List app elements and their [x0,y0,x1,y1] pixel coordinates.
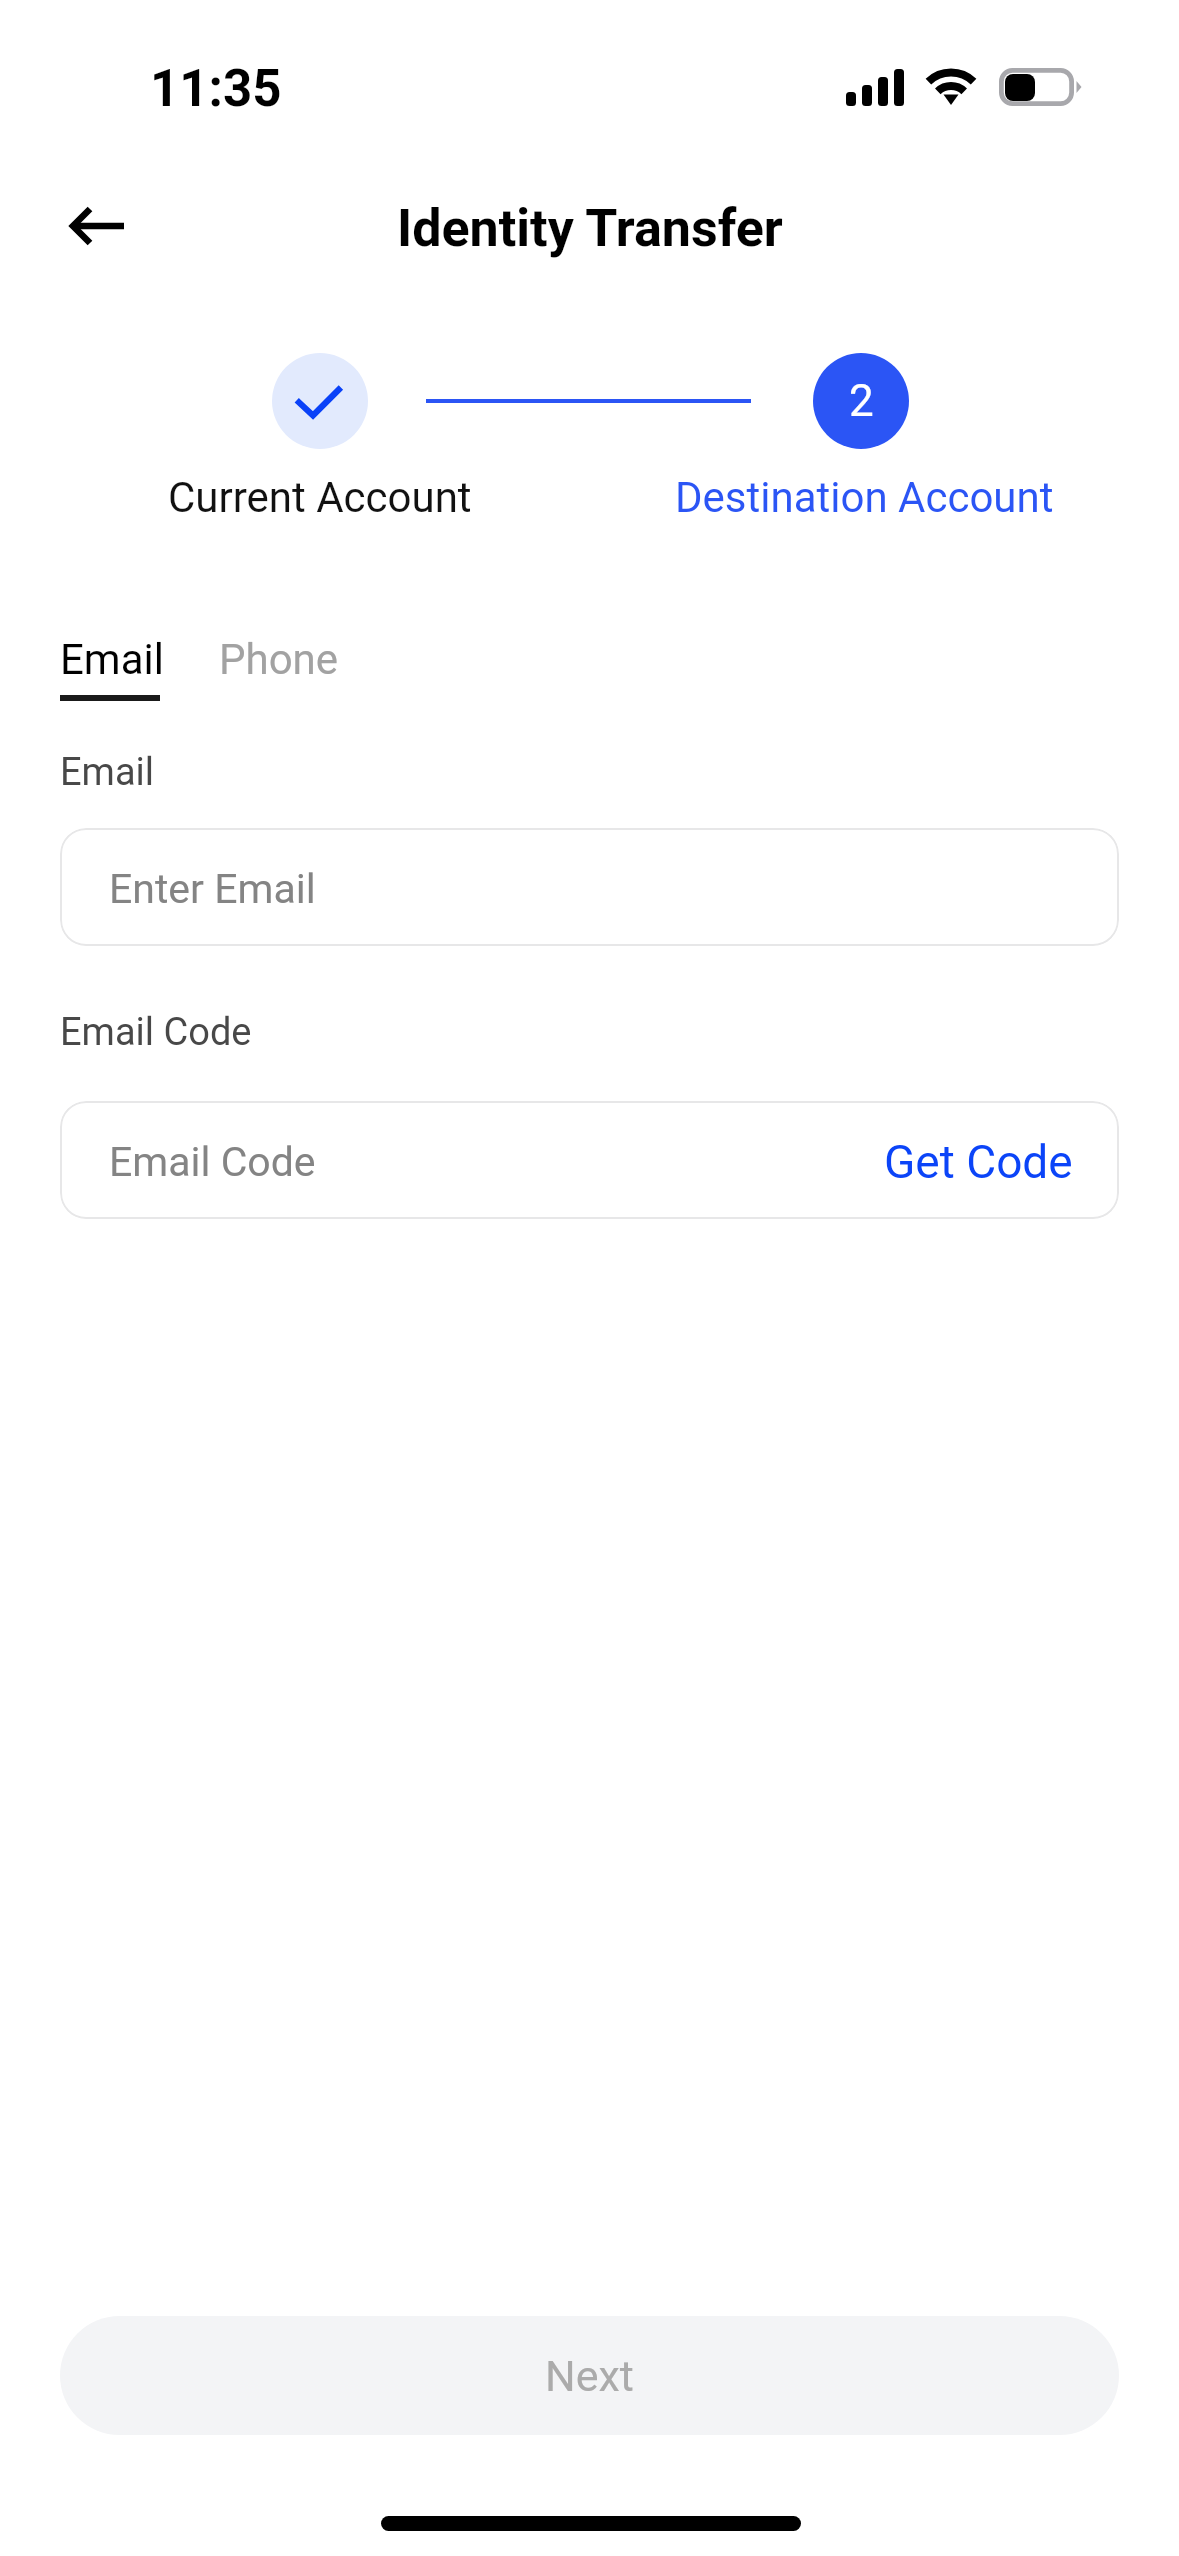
staticText: Next [545,2351,634,2401]
button[interactable]: Current Account step completed [272,353,368,449]
staticText: Email Code [60,1010,252,1055]
button[interactable]: Next [60,2316,1119,2435]
button[interactable]: Email Code [60,1101,1119,1219]
button[interactable]: Enter Email [60,828,1119,946]
button[interactable]: Email [60,635,200,713]
staticText: Phone [219,635,339,684]
staticText: Email [60,635,164,684]
staticText: Email Code [109,1138,316,1186]
staticText: Enter Email [109,865,316,913]
staticText: 11:35 [150,59,282,119]
staticText: Destination Account [675,473,1054,522]
button[interactable]: Phone [219,635,339,684]
button[interactable]: Get Code [884,1135,1073,1189]
button[interactable]: Back [50,178,146,274]
staticText: 2 [849,375,874,427]
staticText: Current Account [168,473,472,522]
button[interactable]: Destination Account step 2 [813,353,909,449]
staticText: Identity Transfer [397,198,783,259]
staticText: Email [60,750,155,795]
staticText: Get Code [884,1135,1073,1189]
